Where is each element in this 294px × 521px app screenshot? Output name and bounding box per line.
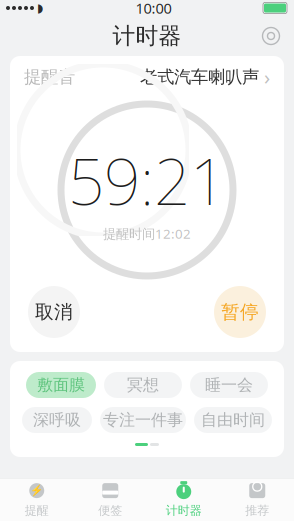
staticText: 10:00 — [135, 0, 171, 18]
button[interactable]: 计时器 — [147, 478, 220, 520]
staticText: 计时器 — [166, 503, 202, 518]
button[interactable]: 自由时间 — [194, 407, 272, 433]
staticText: 提醒 — [25, 503, 49, 518]
staticText: ⚡ — [30, 484, 43, 497]
button[interactable]: 取消 — [28, 286, 80, 338]
staticText: 便签 — [98, 503, 122, 518]
staticText: 提醒音 — [24, 66, 75, 88]
staticText: 取消 — [35, 300, 73, 323]
staticText: ◗ — [37, 1, 43, 15]
button[interactable]: 便签 — [73, 478, 147, 520]
button[interactable]: ⚡ — [0, 478, 73, 520]
staticText: 深呼吸 — [33, 410, 81, 430]
staticText: 敷面膜 — [37, 375, 85, 395]
staticText: 自由时间 — [201, 410, 265, 430]
staticText: 计时器 — [112, 22, 181, 50]
button[interactable]: 推荐 — [220, 478, 294, 520]
button[interactable]: Settings — [254, 19, 288, 53]
staticText: 暂停 — [221, 300, 259, 323]
button[interactable]: 敷面膜 — [26, 372, 96, 398]
staticText: 推荐 — [245, 503, 269, 518]
staticText: › — [264, 64, 270, 90]
staticText: 老式汽车喇叭声 — [140, 66, 259, 88]
button[interactable]: 暂停 — [214, 286, 266, 338]
staticText: 冥想 — [127, 375, 159, 395]
button[interactable]: 提醒音 — [10, 56, 284, 98]
button[interactable]: 睡一会 — [190, 372, 268, 398]
staticText: 睡一会 — [205, 375, 253, 395]
staticText: 59:21 — [68, 138, 226, 223]
staticText: 提醒时间12:02 — [103, 225, 191, 242]
button[interactable]: 冥想 — [104, 372, 182, 398]
button[interactable]: 深呼吸 — [22, 407, 92, 433]
button[interactable]: 专注一件事 — [100, 407, 186, 433]
staticText: 专注一件事 — [103, 410, 183, 430]
